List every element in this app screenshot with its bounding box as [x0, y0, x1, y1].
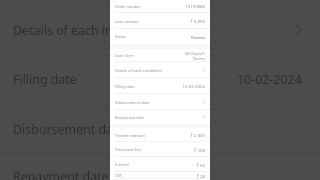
button[interactable]: Details of each installment — [0, 5, 320, 55]
staticText: ₹ 66 — [196, 162, 205, 168]
button[interactable]: Disbursement date — [0, 104, 320, 154]
button[interactable]: Loan Term — [110, 49, 210, 62]
staticText: ₹ 158 — [194, 147, 205, 153]
button[interactable]: Details of each installment — [110, 62, 210, 78]
staticText: ₹ 28 — [196, 173, 205, 179]
staticText: Loan Term — [115, 53, 185, 58]
staticText: Review — [190, 34, 205, 40]
staticText: ₹ 2,803 — [190, 132, 205, 138]
staticText: 10-02-2024 — [182, 83, 205, 89]
other: Details of each installment — [296, 25, 302, 35]
button[interactable]: Repayment date — [0, 151, 320, 180]
button[interactable]: Repayment date — [110, 110, 210, 124]
button[interactable]: GST — [110, 172, 210, 179]
staticText: Interest — [115, 162, 196, 167]
button[interactable]: Interest — [110, 157, 210, 172]
staticText: Details of each installment — [13, 22, 288, 39]
other: Repayment date — [203, 115, 205, 119]
staticText: Repayment date — [115, 115, 201, 120]
button[interactable]: Document Fee — [110, 142, 210, 157]
staticText: Filling date — [115, 84, 182, 89]
staticText: 13169886 — [185, 3, 205, 9]
button[interactable]: Order number — [110, 0, 210, 13]
staticText: Loan amount — [115, 19, 190, 24]
staticText: Details of each installment — [115, 68, 201, 73]
button[interactable]: Filling date — [110, 78, 210, 94]
staticText: 30 Days/1 Terms — [185, 50, 205, 61]
staticText: Disbursement date — [13, 121, 288, 138]
staticText: Disbursement date — [115, 100, 201, 105]
button[interactable]: Filling date — [0, 54, 320, 104]
staticText: Transfer amount — [115, 133, 190, 138]
other: Disbursement date — [203, 100, 205, 104]
button[interactable]: Transfer amount — [110, 128, 210, 142]
staticText: Repayment date — [13, 168, 288, 180]
other: Details of each installment — [203, 68, 205, 72]
staticText: ₹ 8,000 — [190, 18, 205, 24]
button[interactable]: Loan amount — [110, 13, 210, 29]
staticText: Filling date — [13, 71, 237, 88]
staticText: Document Fee — [115, 147, 194, 152]
staticText: 10-02-2024 — [237, 71, 302, 88]
staticText: Status — [115, 34, 190, 39]
button[interactable]: Status — [110, 29, 210, 44]
staticText: GST — [115, 173, 196, 178]
button[interactable]: Disbursement date — [110, 94, 210, 110]
staticText: Order number — [115, 4, 185, 9]
